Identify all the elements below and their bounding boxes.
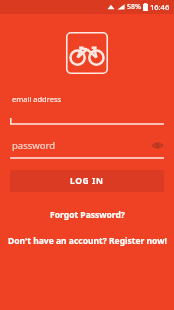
button[interactable]: Don't have an account? Register now! [0, 235, 174, 247]
staticText: LOG IN [70, 175, 104, 187]
button[interactable]: Forgot Password? [0, 209, 174, 221]
button[interactable]: Show password [150, 138, 164, 152]
button[interactable]: password [10, 138, 164, 159]
staticText: Forgot Password? [50, 209, 125, 221]
staticText: email address [12, 94, 62, 104]
staticText: 58% [127, 2, 141, 12]
staticText: Don't have an account? Register now! [8, 235, 167, 247]
button[interactable]: email address [10, 94, 164, 125]
button[interactable]: LOG IN [10, 170, 164, 192]
staticText: 16:46 [150, 2, 170, 12]
staticText: password [12, 139, 150, 152]
